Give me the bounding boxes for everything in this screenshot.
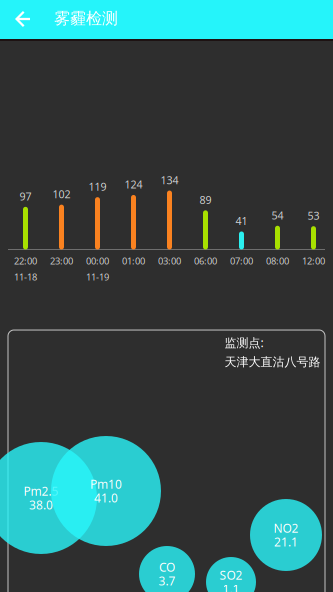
staticText: 11-18 bbox=[14, 271, 37, 283]
staticText: 1.1 bbox=[222, 581, 239, 592]
staticText: Pm2.5 bbox=[23, 483, 58, 499]
staticText: CO bbox=[159, 559, 175, 575]
staticText: 41.0 bbox=[94, 490, 118, 506]
staticText: 12:00 bbox=[302, 255, 325, 267]
staticText: 雾霾检测 bbox=[54, 9, 118, 28]
staticText: 11-19 bbox=[86, 271, 109, 283]
staticText: 119 bbox=[88, 180, 106, 194]
staticText: 3.7 bbox=[158, 573, 175, 589]
staticText: NO2 bbox=[273, 520, 298, 536]
staticText: 天津大直沽八号路 bbox=[224, 355, 320, 369]
staticText: 53 bbox=[307, 209, 319, 223]
staticText: 54 bbox=[271, 208, 283, 222]
staticText: 41 bbox=[235, 214, 247, 228]
staticText: 01:00 bbox=[122, 255, 145, 267]
staticText: 134 bbox=[160, 173, 178, 187]
staticText: 38.0 bbox=[29, 497, 53, 513]
staticText: 00:00 bbox=[86, 255, 109, 267]
staticText: 03:00 bbox=[158, 255, 181, 267]
staticText: 06:00 bbox=[194, 255, 217, 267]
staticText: 07:00 bbox=[230, 255, 253, 267]
staticText: 22:00 bbox=[14, 255, 37, 267]
staticText: 21.1 bbox=[274, 534, 298, 550]
button[interactable]: Back bbox=[3, 0, 43, 38]
staticText: 97 bbox=[19, 189, 31, 203]
staticText: 监测点: bbox=[224, 335, 263, 351]
staticText: 23:00 bbox=[50, 255, 73, 267]
staticText: Pm10 bbox=[90, 476, 122, 492]
staticText: SO2 bbox=[219, 567, 242, 583]
staticText: 08:00 bbox=[266, 255, 289, 267]
staticText: 89 bbox=[199, 193, 211, 207]
staticText: 124 bbox=[124, 177, 142, 192]
staticText: 102 bbox=[52, 187, 70, 201]
